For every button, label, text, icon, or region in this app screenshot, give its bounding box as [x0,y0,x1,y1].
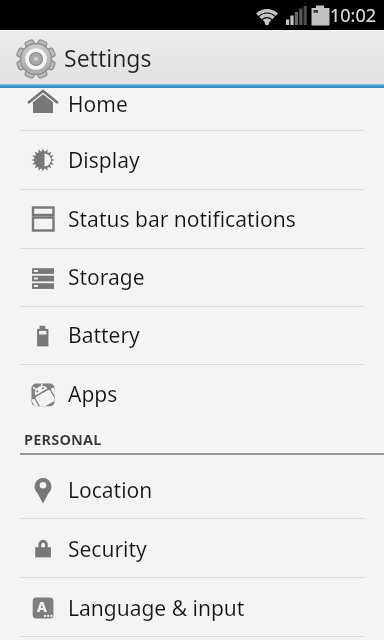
staticText: Language & input [68,594,245,623]
staticText: A [37,597,47,616]
button[interactable]: Location [0,455,384,518]
staticText: Apps [68,380,118,409]
button[interactable]: Battery [0,307,384,364]
button[interactable]: Status bar notifications [0,190,384,248]
staticText: Settings [64,42,152,73]
button[interactable]: Storage [0,249,384,306]
button[interactable]: Home [0,88,384,130]
staticText: Status bar notifications [68,205,296,234]
button[interactable]: Security [0,519,384,577]
button[interactable]: Display [0,131,384,189]
staticText: Display [68,146,140,175]
staticText: Storage [68,263,145,292]
staticText: PERSONAL [24,429,102,449]
staticText: Home [68,90,128,119]
staticText: Location [68,476,153,505]
button[interactable]: A [0,578,384,636]
button[interactable]: Apps [0,365,384,424]
staticText: Battery [68,321,140,350]
staticText: 10:02 [330,3,377,28]
staticText: Security [68,535,147,564]
